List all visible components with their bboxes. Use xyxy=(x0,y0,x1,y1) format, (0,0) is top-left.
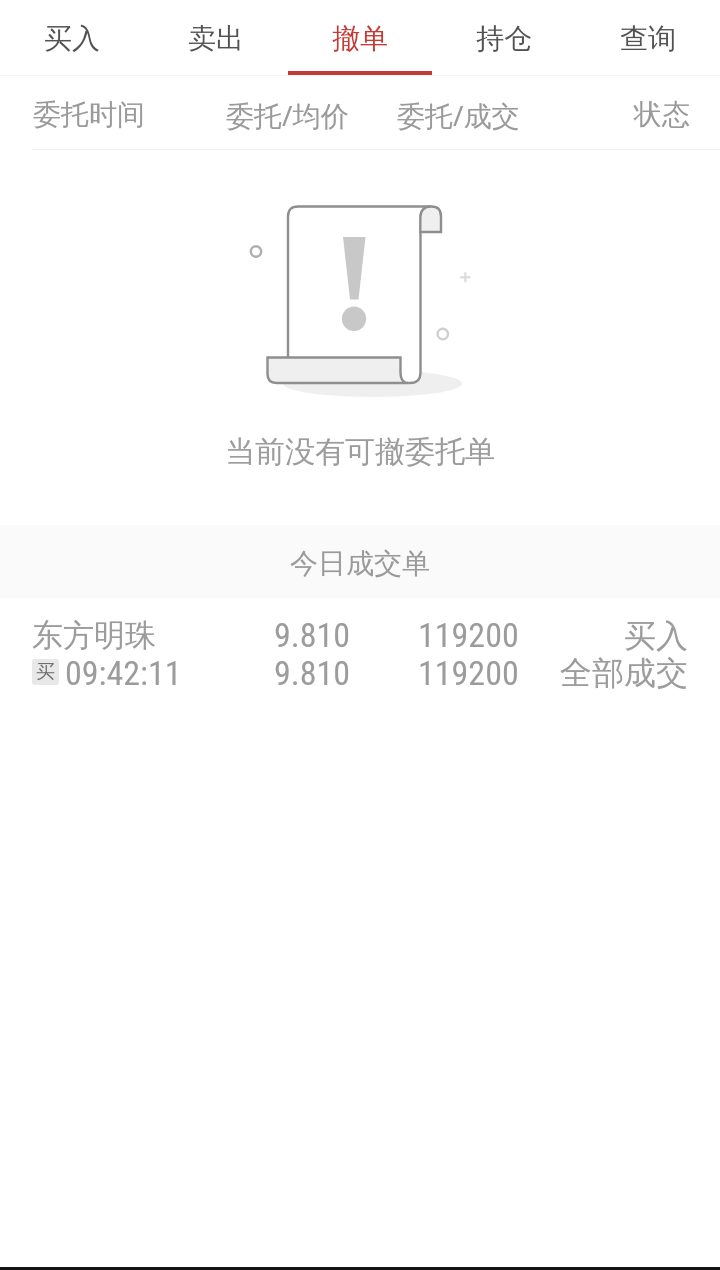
staticText: 9.810 xyxy=(274,615,351,655)
button[interactable]: 卖出 xyxy=(144,0,288,75)
button[interactable]: 撤单 xyxy=(288,0,432,75)
staticText: 119200 xyxy=(418,653,519,693)
staticText: 119200 xyxy=(418,615,519,655)
staticText: 持仓 xyxy=(476,21,532,56)
staticText: 买入 xyxy=(0,616,688,656)
button[interactable]: 买入 xyxy=(0,0,144,75)
staticText: 委托时间 xyxy=(33,97,145,132)
staticText: 撤单 xyxy=(332,21,388,56)
staticText: 买入 xyxy=(44,21,100,56)
other: No cancellable orders illustration xyxy=(240,195,480,400)
staticText: 东方明珠 xyxy=(32,616,156,655)
staticText: 卖出 xyxy=(188,21,244,56)
staticText: 状态 xyxy=(634,97,690,132)
staticText: 买 xyxy=(36,660,55,684)
staticText: 查询 xyxy=(620,21,676,56)
staticText: 今日成交单 xyxy=(290,546,430,581)
staticText: 当前没有可撤委托单 xyxy=(0,433,720,471)
staticText: 委托/均价 xyxy=(226,96,349,134)
staticText: 全部成交 xyxy=(0,653,688,693)
button[interactable]: 东方明珠 xyxy=(0,598,720,698)
staticText: 委托/成交 xyxy=(397,96,520,134)
button[interactable]: 持仓 xyxy=(432,0,576,75)
staticText: 9.810 xyxy=(274,653,351,693)
button[interactable]: 查询 xyxy=(576,0,720,75)
staticText: 09:42:11 xyxy=(65,653,182,693)
